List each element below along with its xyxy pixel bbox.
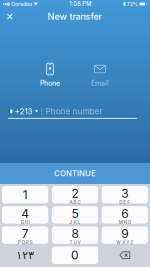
staticText: 8 bbox=[71, 226, 78, 241]
staticText: New transfer bbox=[47, 11, 102, 22]
staticText: 4 bbox=[21, 206, 29, 221]
staticText: 9 bbox=[121, 226, 128, 241]
button[interactable]: +213 bbox=[8, 105, 38, 117]
button[interactable]: 5 bbox=[52, 206, 98, 224]
staticText: +213 bbox=[15, 106, 33, 116]
staticText: D E F bbox=[119, 199, 130, 205]
staticText: Ooredoo bbox=[11, 1, 32, 7]
staticText: J K L bbox=[69, 220, 80, 225]
button[interactable]: 0 bbox=[52, 246, 98, 264]
staticText: A B C bbox=[69, 199, 80, 205]
button[interactable]: 3 bbox=[102, 186, 148, 204]
button[interactable]: 6 bbox=[102, 206, 148, 224]
button[interactable]: 7 bbox=[2, 226, 48, 244]
staticText: 3 bbox=[121, 186, 128, 201]
button[interactable]: Email bbox=[75, 63, 125, 87]
button[interactable]: 1 bbox=[2, 186, 48, 204]
staticText: 2 bbox=[71, 186, 78, 201]
button[interactable]: Phone bbox=[25, 63, 75, 87]
staticText: Email bbox=[91, 79, 109, 87]
staticText: 1:08 PM bbox=[69, 1, 91, 7]
button[interactable]: CONTINUE bbox=[0, 163, 150, 184]
staticText: 0 bbox=[71, 248, 79, 262]
staticText: CONTINUE bbox=[54, 169, 96, 178]
staticText: 5 bbox=[71, 206, 78, 221]
button[interactable]: Delete bbox=[102, 246, 148, 264]
staticText: P Q R S bbox=[18, 240, 33, 245]
button[interactable]: 8 bbox=[52, 226, 98, 244]
staticText: 7 bbox=[22, 226, 29, 241]
staticText: T U V bbox=[69, 240, 80, 245]
button[interactable]: Close bbox=[0, 10, 19, 23]
staticText: Phone number bbox=[46, 106, 103, 116]
button[interactable]: Arabic numerals bbox=[2, 246, 48, 264]
button[interactable]: 2 bbox=[52, 186, 98, 204]
staticText: Phone bbox=[40, 79, 60, 87]
staticText: 1 bbox=[23, 187, 28, 202]
staticText: G H I bbox=[21, 220, 30, 225]
button[interactable]: 9 bbox=[102, 226, 148, 244]
staticText: W X Y Z bbox=[116, 240, 133, 245]
staticText: 6 bbox=[121, 206, 128, 221]
staticText: M N O bbox=[119, 220, 131, 225]
staticText: ١٢٣ bbox=[16, 249, 34, 261]
button[interactable]: 4 bbox=[2, 206, 48, 224]
staticText: 72% bbox=[127, 1, 138, 7]
